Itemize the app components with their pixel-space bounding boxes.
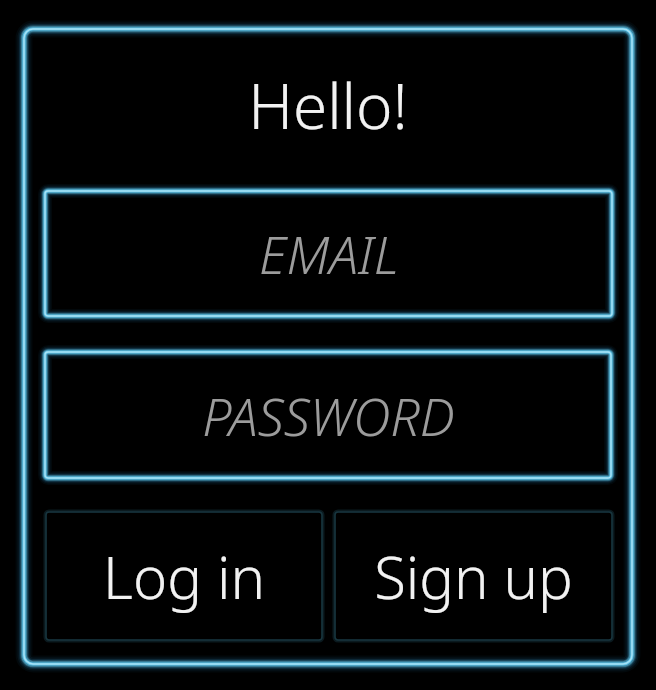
button[interactable]: EMAIL bbox=[45, 191, 612, 316]
button[interactable]: PASSWORD bbox=[45, 352, 611, 478]
button[interactable]: Sign up bbox=[335, 512, 612, 640]
staticText: EMAIL bbox=[259, 218, 399, 289]
button[interactable]: Log in bbox=[46, 512, 322, 640]
staticText: Hello! bbox=[248, 63, 408, 147]
staticText: Log in bbox=[103, 537, 265, 616]
staticText: Sign up bbox=[374, 537, 573, 616]
staticText: PASSWORD bbox=[202, 380, 455, 451]
